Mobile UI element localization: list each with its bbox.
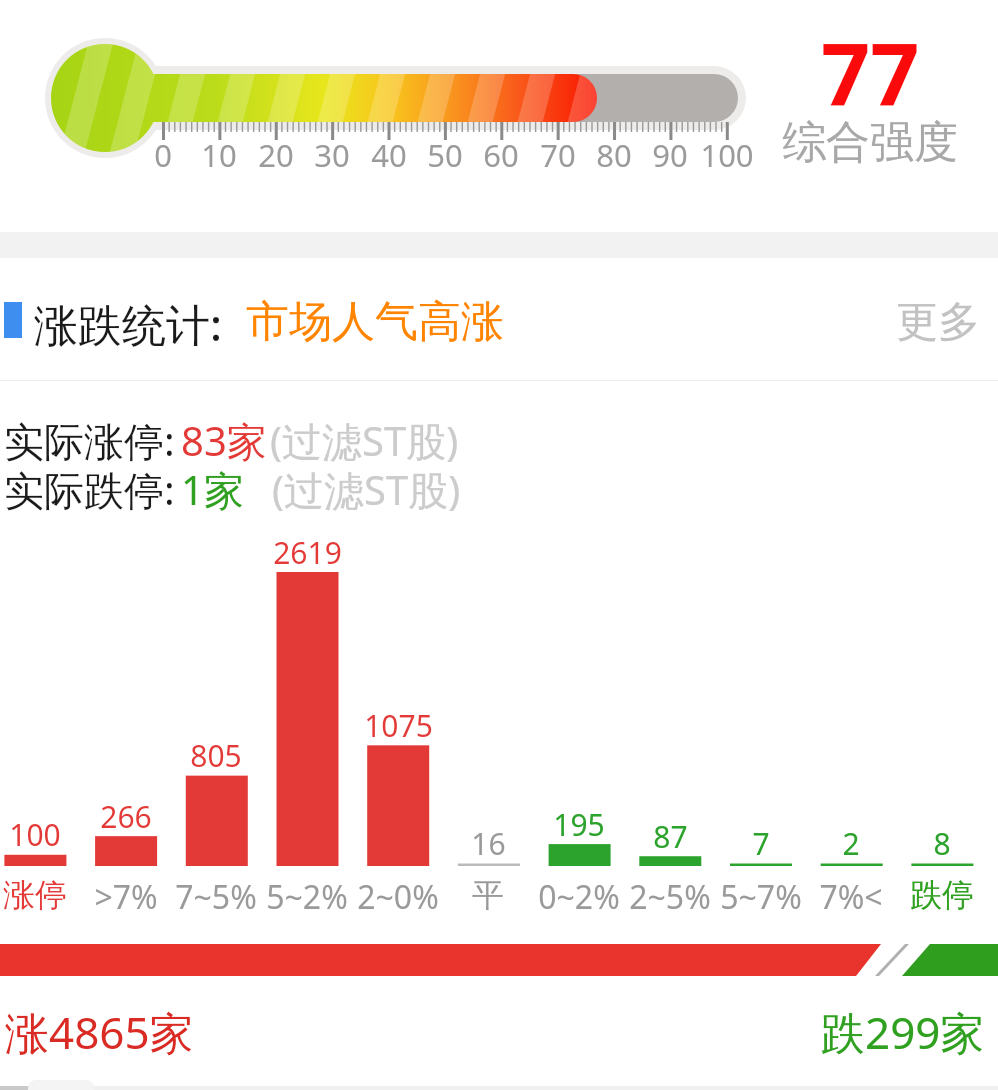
staticText: 16 (471, 823, 506, 864)
staticText: 30 (314, 134, 350, 176)
staticText: 2 (842, 823, 860, 864)
staticText: 87 (653, 816, 688, 857)
staticText: (过滤ST股) (272, 462, 461, 517)
staticText: 70 (540, 134, 576, 176)
staticText: 100 (9, 814, 61, 855)
staticText: >7% (94, 875, 158, 919)
staticText: 综合强度 (782, 115, 958, 170)
staticText: 7%< (819, 875, 883, 919)
staticText: 市场人气高涨 (246, 295, 504, 349)
staticText: 60 (483, 134, 519, 176)
staticText: 77 (821, 14, 920, 112)
staticText: 90 (652, 134, 688, 176)
staticText: 跌停 (910, 875, 974, 915)
staticText: 805 (190, 735, 242, 776)
button[interactable]: 更多 (856, 296, 980, 346)
staticText: 7 (752, 823, 770, 864)
staticText: 涨4865家 (5, 1002, 194, 1062)
staticText: 100 (700, 134, 754, 176)
staticText: 80 (596, 134, 632, 176)
staticText: 8 (933, 823, 951, 864)
staticText: 0 (154, 134, 172, 176)
staticText: 涨停 (3, 875, 67, 915)
staticText: 跌299家 (821, 1002, 985, 1062)
staticText: 266 (100, 796, 152, 837)
staticText: 2~0% (357, 875, 439, 919)
staticText: 2~5% (629, 875, 711, 919)
staticText: 1075 (364, 705, 433, 746)
staticText: 平 (472, 875, 504, 915)
staticText: 195 (553, 804, 605, 845)
staticText: 20 (258, 134, 294, 176)
staticText: 1家 (181, 462, 244, 517)
staticText: 5~2% (266, 875, 348, 919)
staticText: 5~7% (720, 875, 802, 919)
staticText: 2619 (273, 532, 342, 573)
staticText: (过滤ST股) (270, 413, 459, 468)
staticText: 50 (427, 134, 463, 176)
staticText: 10 (201, 134, 237, 176)
staticText: 实际涨停: (4, 413, 175, 468)
staticText: 83家 (181, 413, 267, 468)
staticText: 7~5% (175, 875, 257, 919)
staticText: 涨跌统计: (34, 294, 222, 354)
staticText: 0~2% (538, 875, 620, 919)
staticText: 40 (371, 134, 407, 176)
staticText: 更多 (896, 296, 980, 346)
staticText: 实际跌停: (4, 462, 175, 517)
